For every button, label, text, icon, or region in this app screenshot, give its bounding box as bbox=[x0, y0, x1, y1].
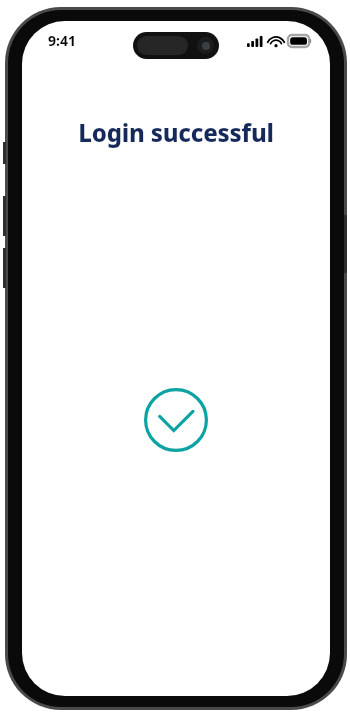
staticText: Login successful bbox=[34, 116, 318, 149]
staticText: 9:41 bbox=[48, 31, 76, 50]
button[interactable]: Login successful bbox=[144, 388, 208, 452]
